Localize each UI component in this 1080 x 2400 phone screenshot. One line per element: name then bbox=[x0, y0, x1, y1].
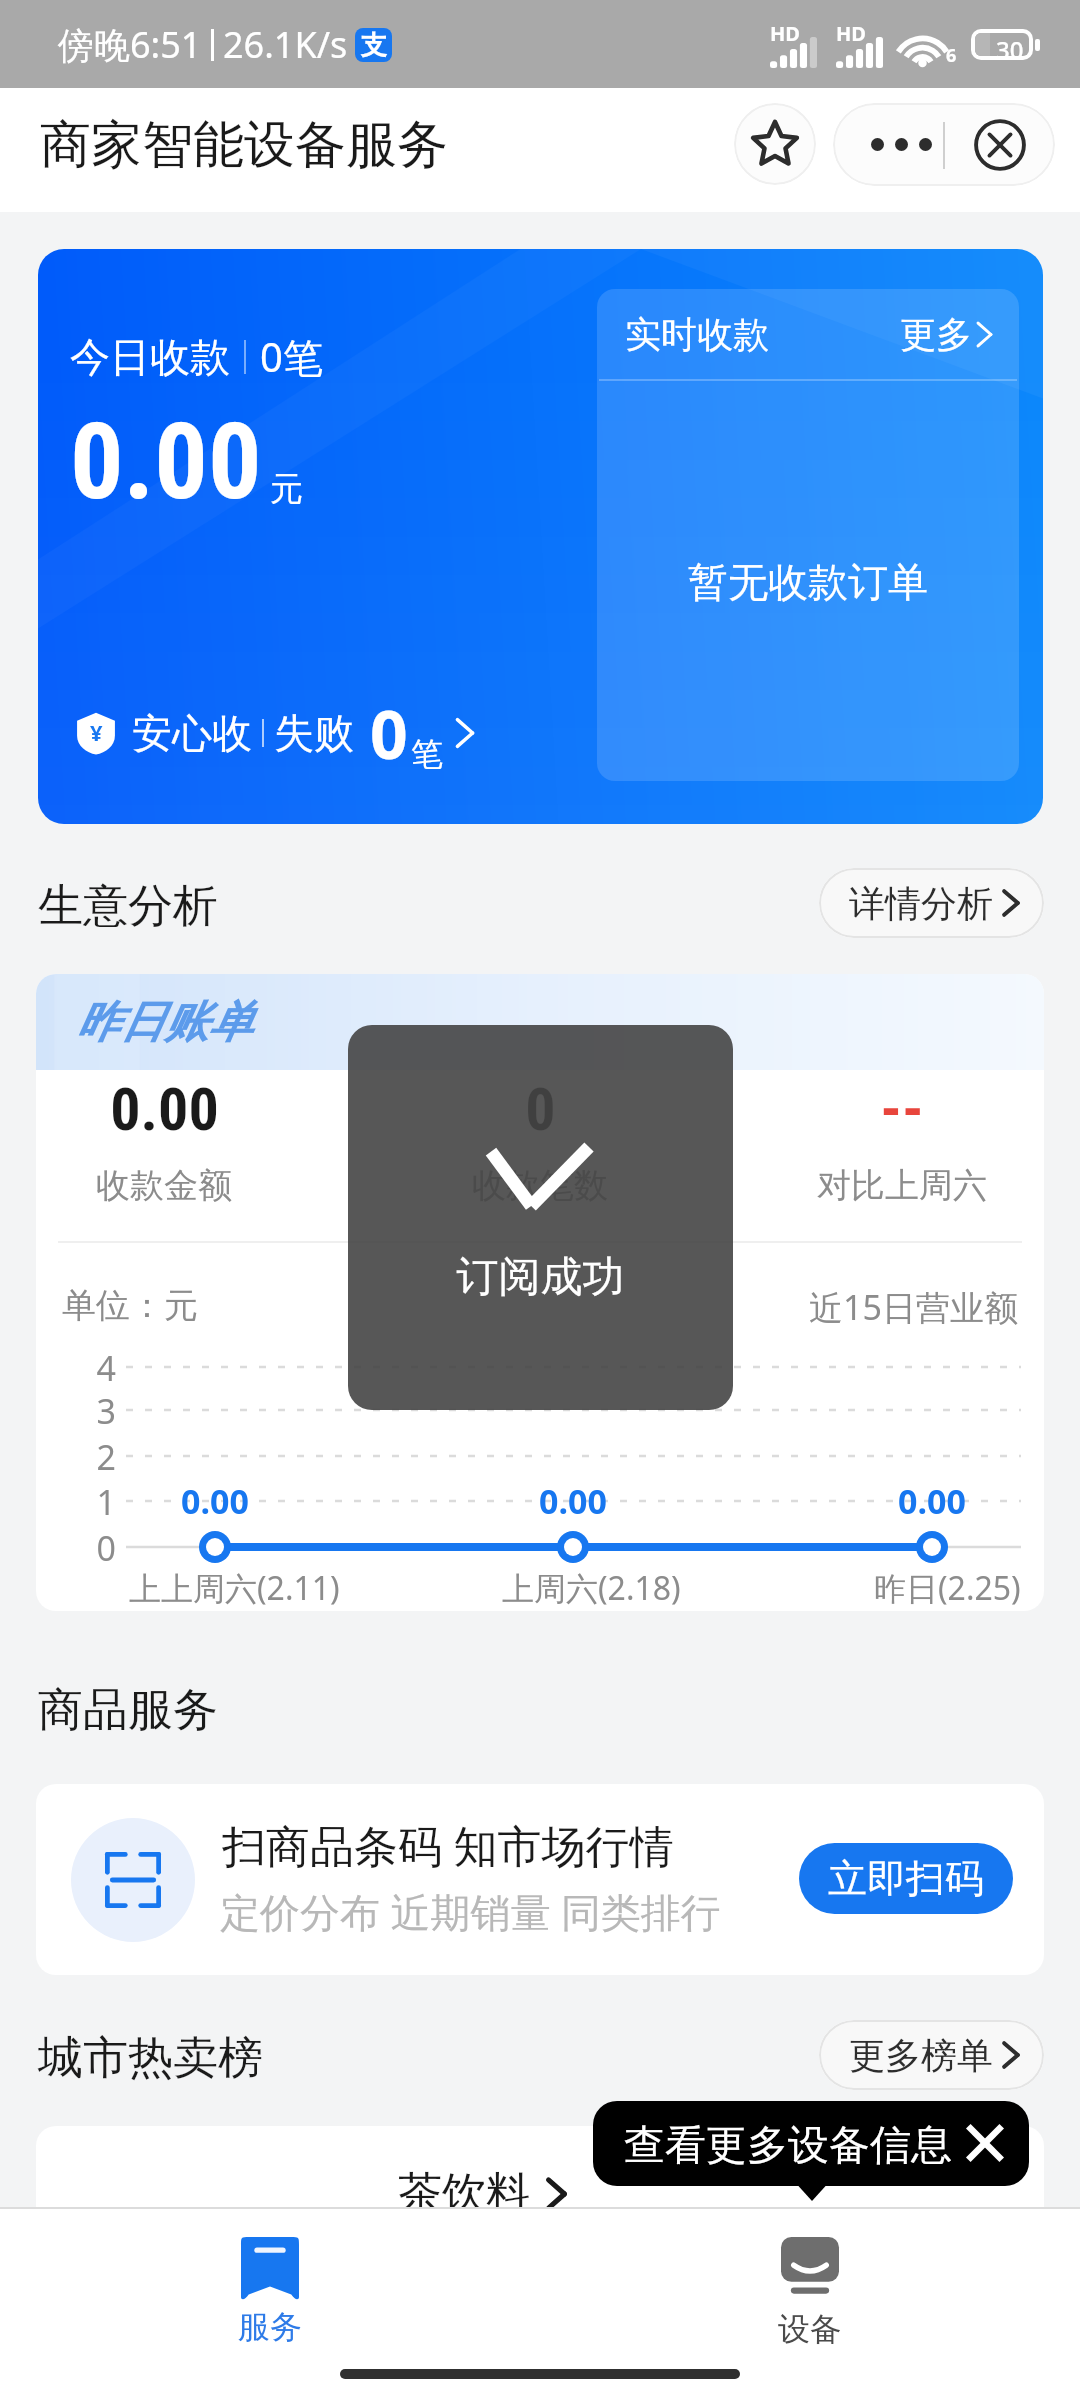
staticText: 商品服务 bbox=[38, 1682, 218, 1739]
button[interactable]: 立即扫码 bbox=[799, 1843, 1013, 1914]
staticText: 3 bbox=[76, 1388, 116, 1434]
button[interactable]: 更多 bbox=[846, 103, 957, 186]
staticText: 安心收 bbox=[132, 708, 252, 758]
button[interactable]: 今日收款 bbox=[38, 249, 1043, 824]
staticText: 更多榜单 bbox=[849, 2033, 993, 2078]
staticText: 定价分布 近期销量 同类排行 bbox=[220, 1884, 721, 1939]
staticText: 对比上周六 bbox=[817, 1164, 987, 1207]
button[interactable]: 更多 bbox=[896, 308, 997, 361]
button[interactable]: 扫商品条码 知市场行情 bbox=[36, 1784, 1044, 1975]
staticText: 今日收款 bbox=[70, 332, 230, 382]
staticText: -- bbox=[880, 1074, 924, 1144]
staticText: 立即扫码 bbox=[828, 1854, 984, 1903]
staticText: 0 bbox=[525, 1074, 556, 1144]
button[interactable]: 关闭 bbox=[944, 103, 1055, 186]
staticText: 笔 bbox=[411, 734, 443, 774]
staticText: 服务 bbox=[238, 2307, 302, 2347]
staticText: 元 bbox=[270, 468, 303, 510]
staticText: 昨日账单 bbox=[76, 995, 252, 1050]
button[interactable]: 收藏 bbox=[734, 103, 816, 185]
staticText: 26.1K/s bbox=[223, 20, 348, 69]
staticText: 0 bbox=[370, 688, 408, 778]
staticText: 0.00 bbox=[539, 1478, 607, 1524]
staticText: 0笔 bbox=[260, 329, 323, 384]
staticText: 1 bbox=[76, 1479, 116, 1525]
button[interactable]: 关闭提示 bbox=[961, 2119, 1009, 2167]
staticText: ¥ bbox=[90, 717, 103, 747]
staticText: 设备 bbox=[778, 2309, 842, 2349]
staticText: HD bbox=[836, 20, 866, 47]
button[interactable]: 详情分析 bbox=[819, 868, 1044, 938]
staticText: 支 bbox=[361, 29, 387, 62]
staticText: 2 bbox=[76, 1434, 116, 1480]
staticText: 订阅成功 bbox=[348, 1251, 733, 1304]
staticText: 失败 bbox=[274, 708, 354, 758]
button[interactable]: 服务 bbox=[0, 2209, 540, 2400]
staticText: 商家智能设备服务 bbox=[40, 113, 448, 177]
staticText: 暂无收款订单 bbox=[688, 557, 928, 607]
staticText: 更多 bbox=[900, 312, 972, 357]
staticText: 扫商品条码 知市场行情 bbox=[222, 1815, 674, 1875]
staticText: 4 bbox=[76, 1345, 116, 1391]
staticText: 单位：元 bbox=[62, 1284, 198, 1327]
staticText: 城市热卖榜 bbox=[38, 2030, 263, 2087]
staticText: HD bbox=[770, 20, 800, 47]
staticText: 0.00 bbox=[110, 1074, 219, 1144]
staticText: 0.00 bbox=[181, 1478, 249, 1524]
staticText: 6 bbox=[946, 43, 957, 68]
staticText: 30 bbox=[996, 33, 1024, 56]
staticText: 0.00 bbox=[898, 1478, 966, 1524]
staticText: 查看更多设备信息 bbox=[624, 2120, 952, 2172]
staticText: 茶饮料 bbox=[398, 2166, 530, 2221]
staticText: 详情分析 bbox=[849, 881, 993, 926]
staticText: 近15日营业额 bbox=[809, 1284, 1018, 1330]
staticText: 上上周六(2.11) bbox=[129, 1566, 340, 1610]
button[interactable]: 更多榜单 bbox=[819, 2020, 1044, 2090]
staticText: 收款笔数 bbox=[472, 1164, 608, 1207]
button[interactable]: 设备 bbox=[540, 2209, 1080, 2400]
staticText: 傍晚6:51 bbox=[58, 20, 202, 69]
staticText: 生意分析 bbox=[38, 878, 218, 935]
staticText: 上周六(2.18) bbox=[502, 1566, 681, 1610]
staticText: 0.00 bbox=[70, 400, 262, 524]
staticText: 实时收款 bbox=[625, 312, 769, 357]
button[interactable]: 茶饮料 bbox=[36, 2126, 1044, 2326]
staticText: 收款金额 bbox=[96, 1164, 232, 1207]
staticText: 昨日(2.25) bbox=[874, 1566, 1021, 1610]
button[interactable]: ¥ bbox=[68, 682, 481, 784]
staticText: 0 bbox=[76, 1525, 116, 1571]
